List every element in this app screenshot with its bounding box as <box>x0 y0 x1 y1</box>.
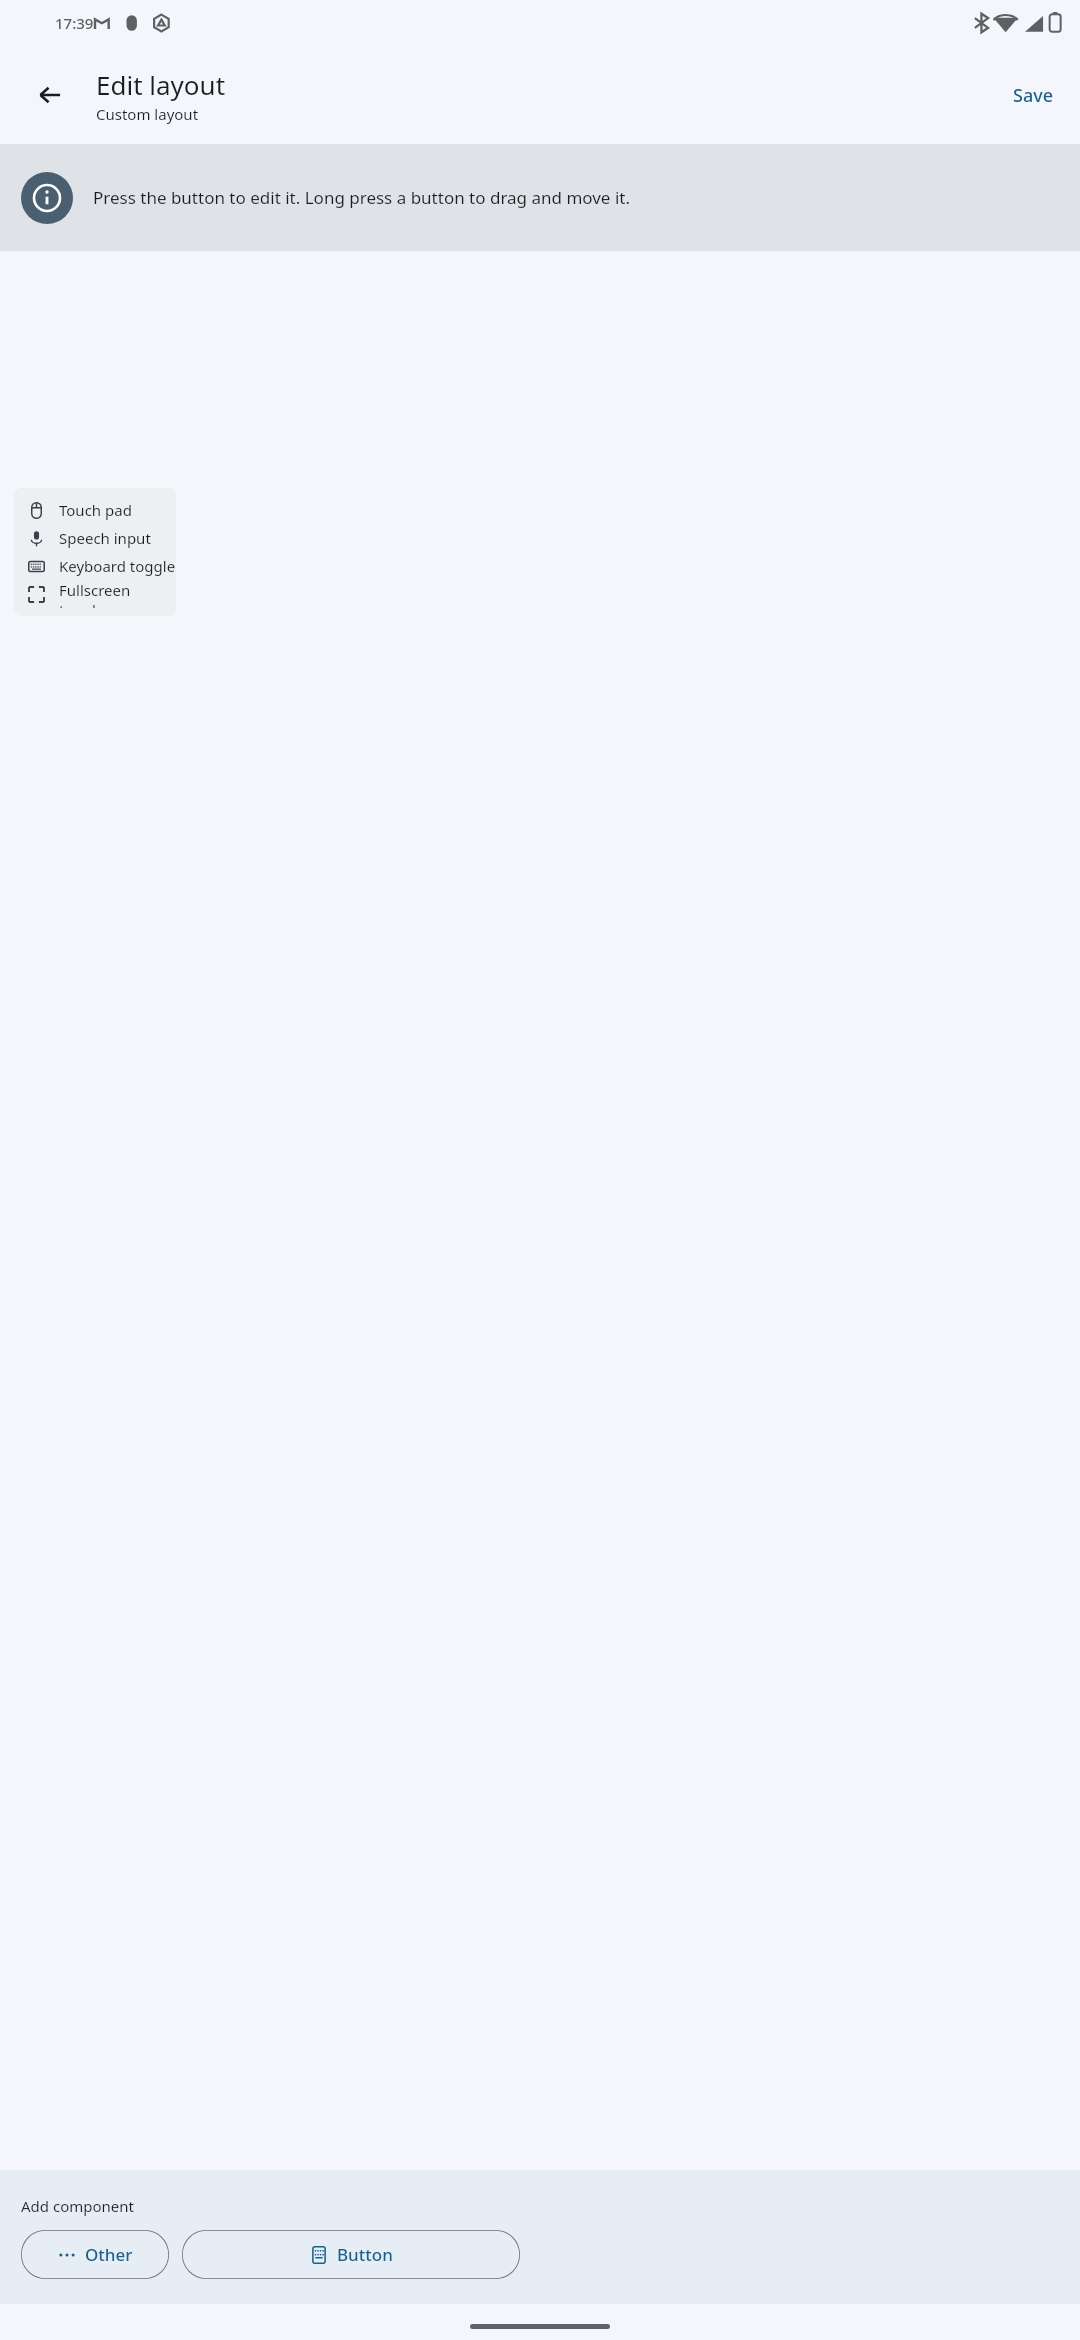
button[interactable]: Back <box>25 70 75 120</box>
button[interactable]: Speech input <box>14 524 176 552</box>
button[interactable]: Keyboard toggle <box>14 552 176 580</box>
staticText: Add component <box>21 2196 134 2216</box>
staticText: Press the button to edit it. Long press … <box>93 186 630 209</box>
staticText: Keyboard toggle <box>59 556 176 576</box>
button[interactable]: Fullscreen toggle <box>14 580 176 608</box>
button[interactable]: Save <box>999 75 1068 116</box>
staticText: Speech input <box>59 528 151 548</box>
staticText: Save <box>1013 83 1054 108</box>
staticText: Touch pad <box>59 500 132 520</box>
staticText: Fullscreen toggle <box>59 580 176 608</box>
staticText: 17:39 <box>55 13 94 33</box>
staticText: Edit layout <box>96 67 226 102</box>
staticText: Other <box>85 2243 133 2266</box>
button[interactable]: Other <box>21 2230 169 2279</box>
staticText: Button <box>337 2243 393 2266</box>
button[interactable]: Touch pad <box>14 496 176 524</box>
staticText: Custom layout <box>96 104 199 124</box>
button[interactable]: Button <box>182 2230 520 2279</box>
